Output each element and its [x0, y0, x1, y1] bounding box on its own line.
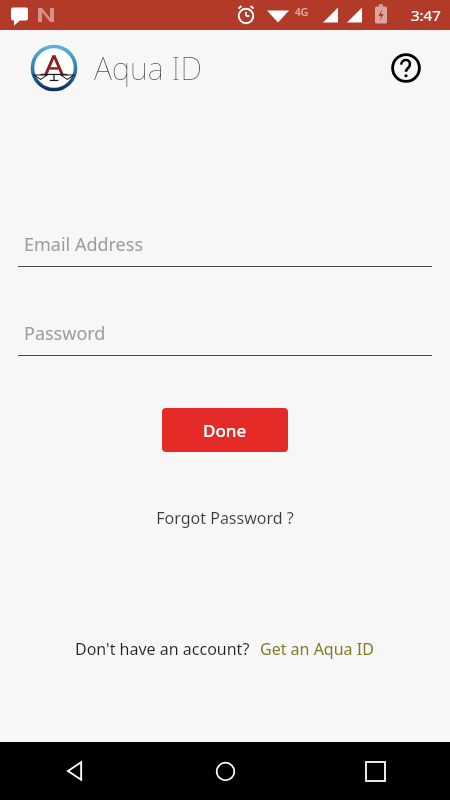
staticText: Done — [203, 419, 247, 442]
button[interactable]: Back — [0, 742, 150, 800]
staticText: Get an Aqua ID — [260, 638, 374, 660]
staticText: Aqua ID — [94, 47, 202, 89]
button[interactable]: Email Address — [18, 228, 432, 267]
staticText: Password — [24, 321, 106, 346]
button[interactable]: Get an Aqua ID — [258, 634, 376, 664]
button[interactable]: Help — [386, 48, 426, 88]
staticText: Forgot Password ? — [156, 507, 294, 529]
button[interactable]: Password — [18, 317, 432, 356]
staticText: Email Address — [24, 232, 144, 257]
button[interactable]: Forgot Password ? — [146, 502, 304, 534]
button[interactable]: Home — [150, 742, 300, 800]
staticText: Don't have an account? — [75, 638, 250, 660]
staticText: 3:47 — [411, 5, 441, 25]
button[interactable]: Done — [162, 408, 288, 452]
button[interactable]: Recent apps — [300, 742, 450, 800]
staticText: 4G — [295, 5, 308, 19]
